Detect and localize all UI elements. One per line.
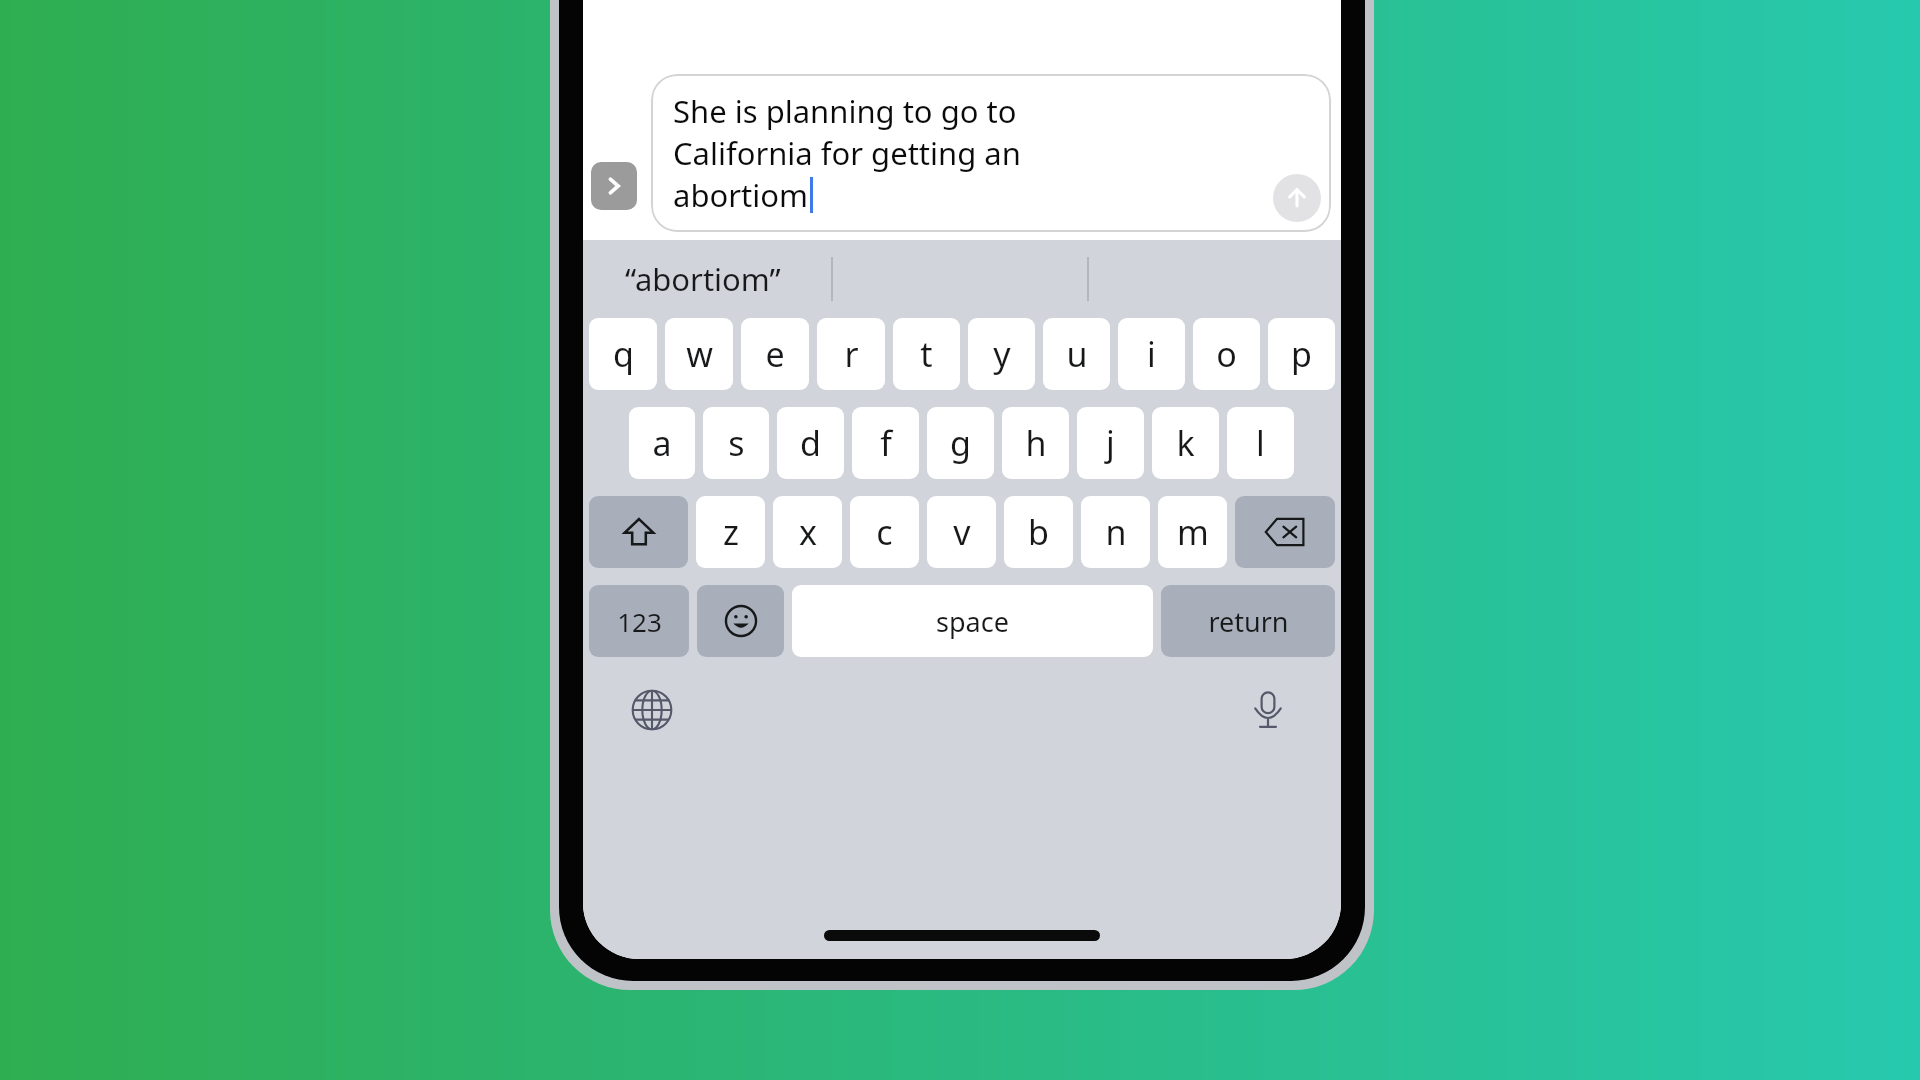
- staticText: y: [993, 331, 1011, 377]
- staticText: b: [1028, 509, 1049, 555]
- button[interactable]: return: [1161, 585, 1335, 657]
- button[interactable]: t: [893, 318, 960, 390]
- button[interactable]: i: [1118, 318, 1185, 390]
- button[interactable]: Send: [1273, 174, 1321, 222]
- staticText: z: [723, 509, 739, 555]
- staticText: She is planning to go to: [673, 90, 1017, 132]
- button[interactable]: g: [927, 407, 994, 479]
- button[interactable]: Expand apps: [591, 162, 637, 210]
- staticText: k: [1176, 420, 1195, 466]
- button[interactable]: Emoji: [697, 585, 784, 657]
- button[interactable]: Shift: [589, 496, 688, 568]
- button[interactable]: u: [1043, 318, 1110, 390]
- staticText: v: [953, 509, 971, 555]
- button[interactable]: l: [1227, 407, 1294, 479]
- button[interactable]: c: [850, 496, 919, 568]
- button[interactable]: 123: [589, 585, 689, 657]
- button[interactable]: p: [1268, 318, 1335, 390]
- staticText: California for getting an: [673, 132, 1021, 174]
- staticText: w: [686, 331, 713, 377]
- button[interactable]: b: [1004, 496, 1073, 568]
- staticText: o: [1216, 331, 1237, 377]
- staticText: i: [1147, 331, 1156, 377]
- staticText: u: [1066, 331, 1088, 377]
- button[interactable]: space: [792, 585, 1153, 657]
- staticText: s: [728, 420, 745, 466]
- staticText: j: [1106, 420, 1115, 466]
- staticText: h: [1025, 420, 1047, 466]
- staticText: space: [936, 603, 1009, 640]
- staticText: return: [1208, 603, 1289, 640]
- staticText: f: [880, 420, 892, 466]
- button[interactable]: m: [1158, 496, 1227, 568]
- button[interactable]: “abortiom”: [625, 258, 781, 300]
- button[interactable]: q: [589, 318, 657, 390]
- button[interactable]: w: [665, 318, 733, 390]
- staticText: n: [1105, 509, 1127, 555]
- button[interactable]: Change keyboard: [625, 683, 679, 737]
- staticText: q: [613, 331, 634, 377]
- staticText: c: [876, 509, 893, 555]
- button[interactable]: k: [1152, 407, 1219, 479]
- button[interactable]: y: [968, 318, 1035, 390]
- staticText: a: [652, 420, 672, 466]
- button[interactable]: r: [817, 318, 885, 390]
- button[interactable]: j: [1077, 407, 1144, 479]
- staticText: d: [800, 420, 821, 466]
- staticText: e: [765, 331, 785, 377]
- button[interactable]: d: [777, 407, 844, 479]
- button[interactable]: z: [696, 496, 765, 568]
- button[interactable]: a: [629, 407, 695, 479]
- button[interactable]: e: [741, 318, 809, 390]
- staticText: 123: [617, 604, 662, 639]
- button[interactable]: x: [773, 496, 842, 568]
- button[interactable]: s: [703, 407, 769, 479]
- button[interactable]: n: [1081, 496, 1150, 568]
- button[interactable]: o: [1193, 318, 1260, 390]
- staticText: abortiom: [673, 174, 808, 216]
- staticText: m: [1177, 509, 1209, 555]
- button[interactable]: h: [1002, 407, 1069, 479]
- button[interactable]: v: [927, 496, 996, 568]
- staticText: r: [844, 331, 859, 377]
- button[interactable]: She is planning to go to: [651, 74, 1331, 232]
- staticText: g: [950, 420, 971, 466]
- staticText: l: [1256, 420, 1265, 466]
- staticText: x: [799, 509, 817, 555]
- staticText: p: [1291, 331, 1312, 377]
- button[interactable]: Backspace: [1235, 496, 1335, 568]
- button[interactable]: f: [852, 407, 919, 479]
- staticText: t: [920, 331, 933, 377]
- button[interactable]: Dictate: [1241, 683, 1295, 737]
